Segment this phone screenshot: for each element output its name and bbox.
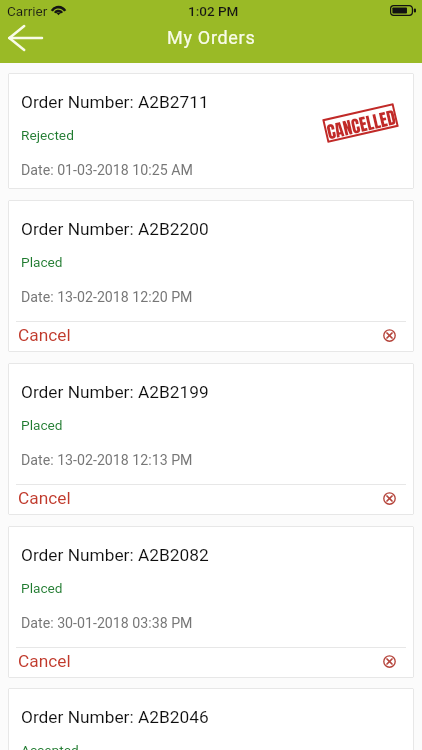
staticText: Cancel [18, 651, 71, 671]
staticText: Order Number: A2B2200 [21, 219, 209, 239]
staticText: Date: 13-02-2018 12:20 PM [21, 289, 193, 306]
staticText: Date: 30-01-2018 03:38 PM [21, 615, 193, 632]
button[interactable]: Order Number: A2B2199 [8, 363, 414, 515]
staticText: Placed [21, 580, 63, 596]
staticText: Cancel [18, 488, 71, 508]
button[interactable]: Cancel order [379, 325, 399, 345]
staticText: Date: 01-03-2018 10:25 AM [21, 162, 193, 179]
button[interactable]: Cancel order [379, 488, 399, 508]
staticText: Date: 13-02-2018 12:13 PM [21, 452, 193, 469]
button[interactable]: Order Number: A2B2082 [8, 526, 414, 678]
staticText: Order Number: A2B2082 [21, 545, 209, 565]
staticText: Order Number: A2B2199 [21, 382, 209, 402]
staticText: Carrier [7, 3, 48, 19]
staticText: 1:02 PM [188, 3, 239, 19]
button[interactable]: Order Number: A2B2200 [8, 200, 414, 352]
staticText: Accepted [21, 742, 79, 750]
button[interactable]: Order Number: A2B2711 [8, 73, 414, 189]
staticText: Placed [21, 254, 63, 270]
staticText: My Orders [167, 27, 256, 48]
button[interactable]: Cancel [8, 320, 414, 350]
staticText: Placed [21, 417, 63, 433]
staticText: Order Number: A2B2046 [21, 707, 209, 727]
button[interactable]: Order Number: A2B2046 [8, 688, 414, 750]
staticText: Rejected [21, 127, 74, 143]
staticText: Cancel [18, 325, 71, 345]
button[interactable]: Cancel [8, 646, 414, 676]
staticText: CANCELLED [324, 104, 398, 143]
button[interactable]: Back [0, 20, 52, 63]
staticText: Order Number: A2B2711 [21, 92, 209, 112]
button[interactable]: Cancel order [379, 651, 399, 671]
button[interactable]: Cancel [8, 483, 414, 513]
